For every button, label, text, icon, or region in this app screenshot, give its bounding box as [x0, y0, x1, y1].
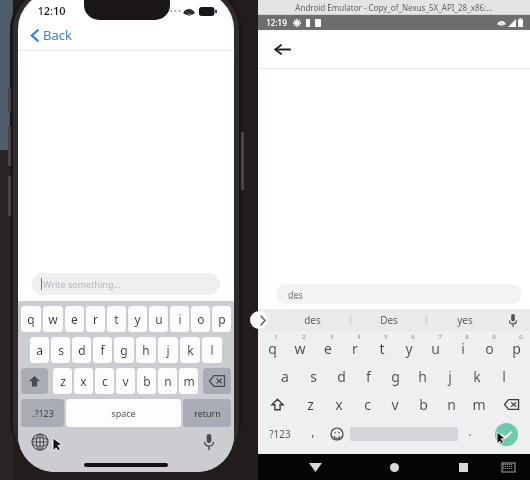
button[interactable]: 2 [286, 331, 314, 362]
staticText: c [364, 395, 371, 414]
button[interactable]: h [136, 337, 156, 363]
button[interactable]: l [490, 362, 517, 390]
button[interactable]: d [327, 362, 355, 390]
button[interactable]: h [409, 362, 436, 390]
button[interactable]: Back [268, 35, 296, 63]
staticText: des [304, 313, 321, 327]
button[interactable]: Switch keyboard [30, 432, 50, 452]
button[interactable]: c [353, 390, 381, 418]
button[interactable]: Enter [482, 418, 530, 450]
button[interactable]: space [66, 399, 181, 427]
button[interactable]: des [274, 309, 350, 331]
button[interactable]: g [114, 337, 134, 363]
button[interactable]: i [170, 306, 189, 332]
button[interactable]: n [158, 368, 177, 394]
button[interactable]: yes [427, 309, 502, 331]
button[interactable]: z [53, 368, 72, 394]
staticText: k [187, 342, 194, 358]
button[interactable]: Home [383, 456, 405, 478]
button[interactable]: Voice input [504, 311, 522, 329]
button[interactable]: 6 [395, 331, 422, 362]
button[interactable]: Back [304, 456, 326, 478]
staticText: w [48, 311, 58, 327]
button[interactable]: m [179, 368, 198, 394]
button[interactable]: 4 [341, 331, 368, 362]
button[interactable]: des [276, 284, 522, 304]
button[interactable]: 0 [503, 331, 530, 362]
staticText: n [447, 395, 456, 414]
button[interactable]: d [72, 337, 91, 363]
button[interactable]: k [180, 337, 200, 363]
button[interactable]: r [86, 306, 105, 332]
button[interactable] [203, 368, 231, 394]
staticText: i [178, 311, 182, 327]
button[interactable] [21, 368, 48, 394]
staticText: d [78, 342, 86, 358]
staticText: m [183, 373, 195, 389]
button[interactable]: 5 [368, 331, 395, 362]
button[interactable]: Des [351, 309, 426, 331]
button[interactable]: More suggestions [250, 311, 268, 329]
button[interactable]: 7 [422, 331, 449, 362]
button[interactable]: Dictate [199, 432, 219, 452]
button[interactable]: q [21, 306, 41, 332]
button[interactable]: . [458, 418, 482, 450]
button[interactable]: b [409, 390, 437, 418]
button[interactable]: Back [18, 20, 234, 50]
button[interactable]: v [381, 390, 409, 418]
staticText: 2 [302, 333, 306, 341]
button[interactable]: b [137, 368, 156, 394]
staticText: r [352, 339, 358, 358]
button[interactable]: c [95, 368, 114, 394]
button[interactable]: e [65, 306, 84, 332]
staticText: 12:19 [266, 17, 287, 28]
staticText: 5 [384, 333, 388, 341]
staticText: u [431, 339, 440, 358]
button[interactable]: u [149, 306, 168, 332]
button[interactable]: y [128, 306, 147, 332]
button[interactable]: return [183, 399, 231, 427]
button[interactable]: j [158, 337, 178, 363]
button[interactable]: l [202, 337, 222, 363]
button[interactable]: x [325, 390, 353, 418]
button[interactable]: x [74, 368, 93, 394]
button[interactable]: o [191, 306, 210, 332]
button[interactable]: Keyboard [498, 457, 518, 477]
button[interactable]: f [355, 362, 382, 390]
staticText: c [102, 373, 108, 389]
button[interactable]: Emoji [324, 418, 350, 450]
button[interactable]: n [437, 390, 465, 418]
button[interactable]: Recents [452, 456, 474, 478]
button[interactable]: p [212, 306, 231, 332]
button[interactable]: f [93, 337, 112, 363]
staticText: p [512, 339, 521, 358]
button[interactable]: w [43, 306, 63, 332]
staticText: v [122, 373, 129, 389]
button[interactable]: j [436, 362, 463, 390]
button[interactable]: 1 [258, 331, 286, 362]
button[interactable]: a [30, 337, 49, 363]
button[interactable]: k [463, 362, 490, 390]
staticText: Back [43, 26, 72, 44]
button[interactable]: .?123 [21, 399, 64, 427]
staticText: t [379, 339, 385, 358]
button[interactable]: v [116, 368, 135, 394]
button[interactable]: Write something... [32, 273, 220, 295]
button[interactable]: g [382, 362, 409, 390]
button[interactable]: t [107, 306, 126, 332]
button[interactable]: ?123 [258, 418, 301, 450]
button[interactable]: s [299, 362, 327, 390]
button[interactable]: m [465, 390, 493, 418]
button[interactable]: z [296, 390, 325, 418]
staticText: 6 [411, 333, 415, 341]
staticText: d [337, 367, 346, 386]
button[interactable]: Backspace [493, 390, 530, 418]
button[interactable]: 8 [449, 331, 476, 362]
button[interactable]: 3 [314, 331, 341, 362]
button[interactable]: , [301, 418, 324, 450]
button[interactable]: 9 [476, 331, 503, 362]
button[interactable]: a [271, 362, 299, 390]
button[interactable]: s [51, 337, 70, 363]
button[interactable]: Shift [258, 390, 296, 418]
